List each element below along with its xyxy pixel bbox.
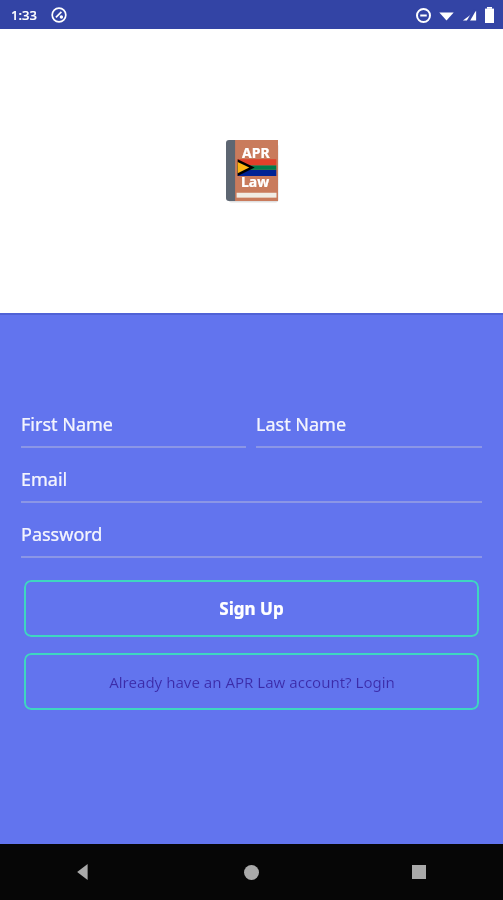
button[interactable]: Last Name (256, 412, 482, 448)
button[interactable]: First Name (21, 412, 246, 448)
staticText: 1:33 (11, 6, 37, 24)
button[interactable]: Home (167, 844, 335, 900)
staticText: Law (241, 172, 270, 191)
staticText: Sign Up (219, 597, 284, 620)
staticText: First Name (21, 412, 113, 437)
staticText: Last Name (256, 412, 347, 437)
button[interactable]: Back (0, 844, 167, 900)
button[interactable]: Email (21, 467, 482, 503)
button[interactable]: Sign Up (24, 580, 479, 637)
button[interactable]: Already have an APR Law account? Login (24, 653, 479, 710)
staticText: Email (21, 467, 68, 492)
button[interactable]: Password (21, 522, 482, 558)
staticText: Password (21, 522, 103, 547)
staticText: Already have an APR Law account? Login (109, 672, 395, 692)
staticText: APR (242, 143, 270, 162)
button[interactable]: Recent apps (335, 844, 503, 900)
